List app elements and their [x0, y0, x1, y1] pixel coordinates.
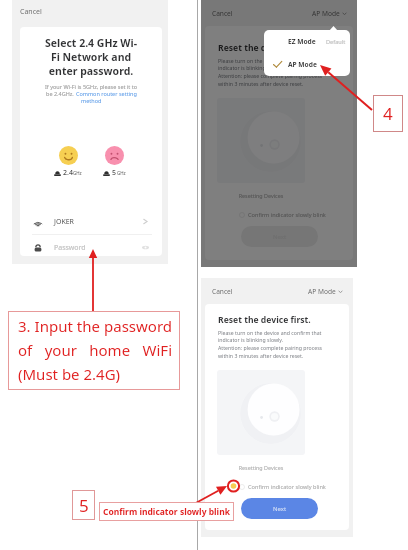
- staticText: 5: [112, 168, 117, 178]
- other: Choose network: [142, 218, 149, 225]
- staticText: Reset the device first.: [218, 314, 311, 326]
- staticText: Please turn on the device and confirm th…: [218, 57, 323, 87]
- staticText: 2.4: [63, 168, 73, 178]
- staticText: Reset the device first.: [218, 42, 311, 54]
- button[interactable]: EZ Mode: [264, 30, 350, 53]
- staticText: Please turn on the device and confirm th…: [218, 329, 323, 359]
- button[interactable]: Password: [20, 235, 162, 256]
- staticText: Cancel: [20, 7, 42, 17]
- staticText: AP Mode: [312, 9, 340, 18]
- button[interactable]: Cancel: [212, 287, 233, 296]
- staticText: Confirm indicator slowly blink: [248, 483, 326, 491]
- staticText: be 2.4GHz.: [46, 90, 76, 97]
- button[interactable]: Next: [241, 498, 318, 519]
- staticText: 5: [79, 494, 89, 517]
- staticText: Resetting Devices: [217, 464, 305, 471]
- button[interactable]: AP Mode: [312, 9, 347, 18]
- button[interactable]: Cancel: [212, 9, 233, 18]
- staticText: Cancel: [212, 9, 233, 18]
- staticText: Password: [54, 243, 86, 253]
- staticText: Confirm indicator slowly blink: [103, 506, 230, 518]
- staticText: GHz: [73, 170, 82, 176]
- staticText: EZ Mode: [288, 37, 316, 46]
- staticText: method: [81, 97, 102, 104]
- staticText: JOKER: [54, 217, 74, 227]
- button[interactable]: Confirm indicator slowly blink: [239, 211, 326, 219]
- staticText: Cancel: [212, 287, 233, 296]
- staticText: GHz: [117, 170, 126, 176]
- button[interactable]: Confirm indicator slowly blink: [239, 483, 326, 491]
- staticText: Resetting Devices: [217, 192, 305, 199]
- staticText: AP Mode: [288, 60, 317, 69]
- other: Show password: [142, 244, 149, 251]
- staticText: Next: [273, 505, 287, 513]
- button[interactable]: AP Mode: [308, 287, 343, 296]
- staticText: Default: [326, 38, 346, 46]
- button[interactable]: Cancel: [20, 7, 42, 17]
- staticText: 4: [383, 102, 393, 125]
- staticText: AP Mode: [308, 287, 336, 296]
- staticText: Confirm indicator slowly blink: [248, 211, 326, 219]
- staticText: 3. Input the password of your home WiFi …: [18, 316, 172, 384]
- button[interactable]: Selected: [264, 53, 350, 76]
- staticText: Common router setting: [76, 90, 137, 97]
- staticText: Select 2.4 GHz Wi- Fi Network and enter …: [20, 36, 162, 78]
- staticText: If your Wi-Fi is 5GHz, please set it to: [45, 83, 138, 90]
- button[interactable]: JOKER: [20, 209, 162, 234]
- other: Selected: [273, 60, 282, 69]
